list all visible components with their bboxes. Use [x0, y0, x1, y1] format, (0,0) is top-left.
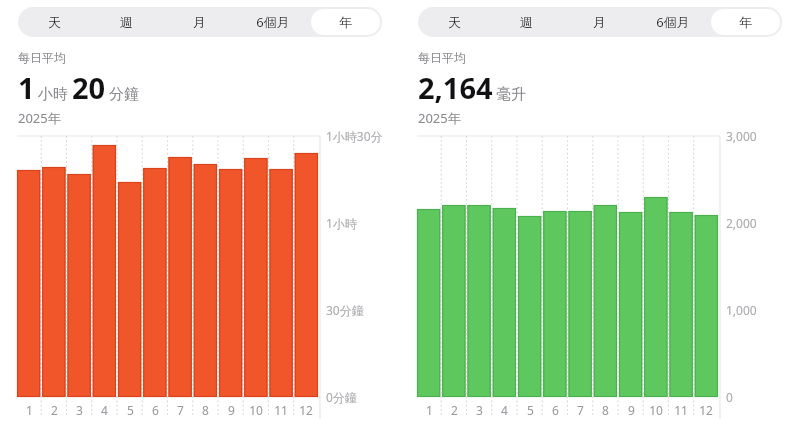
staticText: 月: [593, 14, 606, 30]
staticText: 3: [76, 402, 83, 418]
staticText: 3,000: [726, 128, 757, 144]
staticText: 小時: [38, 85, 68, 104]
staticText: 2025年: [418, 109, 461, 127]
staticText: 1小時: [326, 215, 357, 231]
staticText: 6: [152, 402, 159, 418]
staticText: 2,164: [418, 68, 493, 107]
staticText: 8: [602, 402, 609, 418]
staticText: 2: [451, 402, 458, 418]
staticText: 11: [674, 402, 688, 418]
staticText: 4: [101, 402, 108, 418]
staticText: 天: [48, 14, 61, 30]
staticText: 天: [448, 14, 461, 30]
staticText: 7: [577, 402, 584, 418]
staticText: 6個月: [256, 13, 290, 31]
staticText: 12: [299, 402, 313, 418]
staticText: 11: [274, 402, 288, 418]
button[interactable]: 天: [20, 9, 88, 35]
staticText: 1: [26, 402, 33, 418]
staticText: 2: [51, 402, 58, 418]
staticText: 週: [120, 14, 133, 30]
staticText: 每日平均: [418, 50, 466, 65]
staticText: 年: [739, 14, 752, 30]
staticText: 0: [726, 389, 733, 405]
button[interactable]: 年: [311, 9, 380, 35]
button[interactable]: 6個月: [638, 9, 707, 35]
staticText: 毫升: [496, 85, 526, 104]
staticText: 1小時30分: [326, 128, 383, 144]
staticText: 3: [476, 402, 483, 418]
staticText: 5: [127, 402, 134, 418]
staticText: 8: [202, 402, 209, 418]
staticText: 9: [628, 402, 635, 418]
staticText: 1: [18, 68, 35, 107]
staticText: 10: [649, 402, 663, 418]
staticText: 12: [699, 402, 713, 418]
button[interactable]: 6個月: [238, 9, 307, 35]
staticText: 9: [228, 402, 235, 418]
button[interactable]: 月: [565, 9, 634, 35]
button[interactable]: 月: [165, 9, 234, 35]
staticText: 2025年: [18, 109, 61, 127]
staticText: 月: [193, 14, 206, 30]
staticText: 20: [72, 68, 106, 107]
button[interactable]: 週: [492, 9, 561, 35]
button[interactable]: 週: [92, 9, 161, 35]
staticText: 7: [177, 402, 184, 418]
staticText: 5: [527, 402, 534, 418]
staticText: 6個月: [656, 13, 690, 31]
staticText: 1,000: [726, 302, 757, 318]
staticText: 10: [249, 402, 263, 418]
staticText: 年: [339, 14, 352, 30]
staticText: 每日平均: [18, 50, 66, 65]
staticText: 0分鐘: [326, 389, 357, 405]
staticText: 30分鐘: [326, 302, 364, 318]
staticText: 4: [501, 402, 508, 418]
button[interactable]: 天: [420, 9, 488, 35]
button[interactable]: 年: [711, 9, 780, 35]
staticText: 1: [426, 402, 433, 418]
staticText: 2,000: [726, 215, 757, 231]
staticText: 分鐘: [109, 85, 139, 104]
staticText: 6: [552, 402, 559, 418]
staticText: 週: [520, 14, 533, 30]
